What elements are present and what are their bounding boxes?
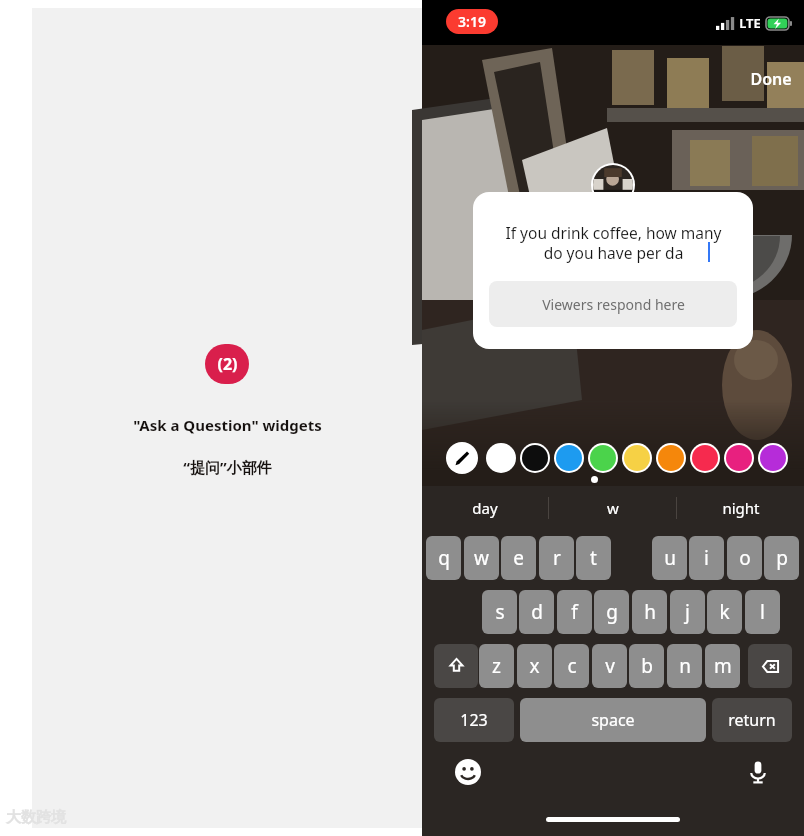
button[interactable]: night (677, 486, 804, 530)
button[interactable]: Colour 4 (590, 445, 616, 471)
button[interactable]: return (712, 698, 792, 742)
button[interactable]: Colour 3 (556, 445, 582, 471)
button[interactable]: o (727, 536, 762, 580)
staticText: g (606, 599, 618, 625)
button[interactable]: b (629, 644, 664, 688)
staticText: z (492, 653, 501, 679)
button[interactable]: d (519, 590, 554, 634)
staticText: o (739, 545, 751, 571)
staticText: 3:19 (458, 12, 486, 31)
button[interactable]: day (422, 486, 548, 530)
button[interactable]: Done (738, 62, 804, 96)
button[interactable]: s (482, 590, 517, 634)
staticText: s (495, 599, 505, 625)
staticText: LTE (739, 14, 761, 32)
staticText: day (472, 498, 498, 518)
staticText: v (605, 653, 615, 679)
staticText: f (571, 599, 578, 625)
staticText: l (760, 599, 765, 625)
staticText: 大数跨境 (6, 808, 66, 827)
staticText: c (567, 653, 577, 679)
staticText: m (714, 653, 732, 679)
button[interactable]: h (632, 590, 667, 634)
staticText: "Ask a Question" widgets (133, 415, 322, 435)
button[interactable]: Colour 9 (760, 445, 786, 471)
staticText: t (590, 545, 597, 571)
button[interactable]: space (520, 698, 706, 742)
button[interactable]: Backspace (748, 644, 792, 688)
button[interactable]: g (594, 590, 629, 634)
button[interactable]: k (707, 590, 742, 634)
button[interactable]: Colour 2 (522, 445, 548, 471)
staticText: p (776, 545, 788, 571)
button[interactable]: l (745, 590, 780, 634)
button[interactable]: w (464, 536, 499, 580)
button[interactable]: Colour 5 (624, 445, 650, 471)
staticText: return (728, 709, 776, 731)
button[interactable]: w (549, 486, 676, 530)
staticText: u (664, 545, 676, 571)
button[interactable]: Colour 7 (692, 445, 718, 471)
button[interactable]: v (592, 644, 627, 688)
staticText: space (591, 709, 635, 731)
button[interactable]: Viewers respond here (489, 281, 737, 327)
button[interactable]: z (479, 644, 514, 688)
staticText: b (641, 653, 653, 679)
staticText: k (719, 599, 730, 625)
button[interactable]: f (557, 590, 592, 634)
staticText: 123 (460, 709, 488, 731)
staticText: i (704, 545, 709, 571)
button[interactable]: Colour 1 (488, 445, 514, 471)
button[interactable]: m (705, 644, 740, 688)
button[interactable]: q (426, 536, 461, 580)
button[interactable]: Dictation (740, 754, 776, 790)
button[interactable]: 123 (434, 698, 514, 742)
staticText: e (513, 545, 524, 571)
button[interactable]: n (667, 644, 702, 688)
button[interactable]: j (670, 590, 705, 634)
button[interactable]: Shift (434, 644, 478, 688)
button[interactable]: Colour 6 (658, 445, 684, 471)
staticText: w (474, 545, 489, 571)
button[interactable]: Eyedropper (446, 442, 478, 474)
button[interactable]: i (689, 536, 724, 580)
staticText: If you drink coffee, how many do you hav… (505, 222, 722, 264)
button[interactable]: c (554, 644, 589, 688)
staticText: w (607, 498, 619, 518)
button[interactable]: t (576, 536, 611, 580)
button[interactable]: x (517, 644, 552, 688)
button[interactable]: u (652, 536, 687, 580)
staticText: n (679, 653, 691, 679)
staticText: Viewers respond here (542, 295, 685, 314)
button[interactable]: r (539, 536, 574, 580)
staticText: Done (750, 68, 792, 90)
staticText: r (553, 545, 561, 571)
staticText: x (529, 653, 540, 679)
button[interactable]: p (764, 536, 799, 580)
button[interactable]: e (501, 536, 536, 580)
staticText: h (644, 599, 656, 625)
staticText: j (685, 599, 690, 625)
button[interactable]: Emoji keyboard (450, 754, 486, 790)
staticText: night (722, 498, 760, 518)
staticText: q (438, 545, 450, 571)
button[interactable]: Colour 8 (726, 445, 752, 471)
staticText: d (531, 599, 543, 625)
button[interactable]: If you drink coffee, how many do you hav… (473, 192, 753, 349)
staticText: “提问”小部件 (183, 457, 272, 477)
staticText: (2) (217, 353, 238, 375)
